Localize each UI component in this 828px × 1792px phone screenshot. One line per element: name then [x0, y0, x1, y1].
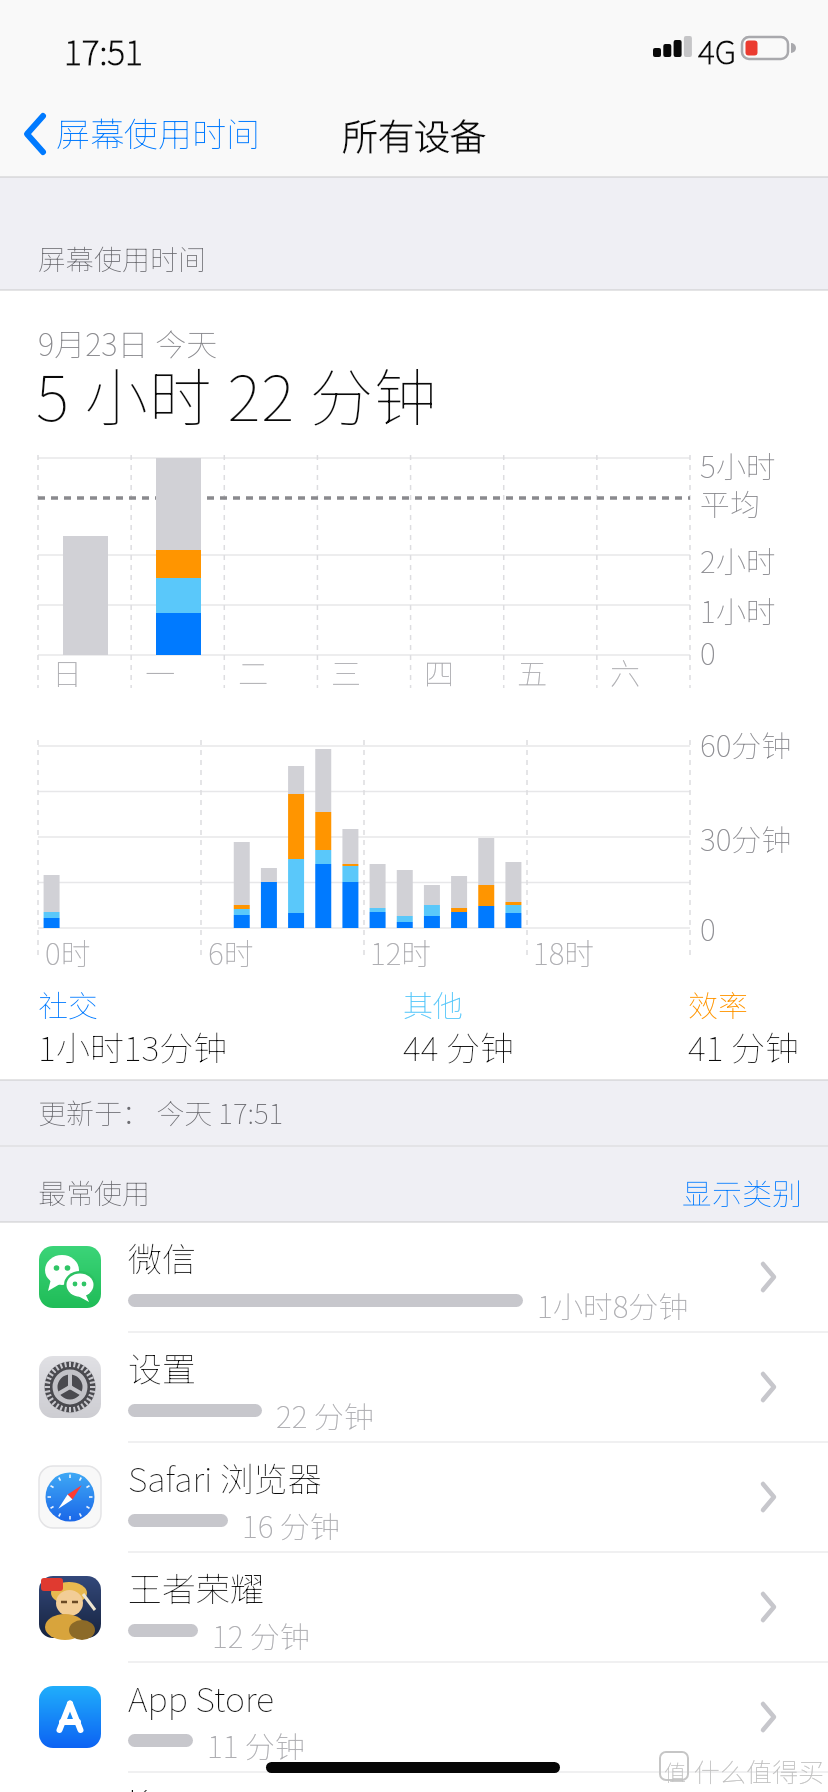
staticText: 12 分钟	[212, 1613, 310, 1656]
button[interactable]	[0, 1552, 828, 1662]
staticText: 平均	[700, 481, 760, 524]
staticText: 9月23日 今天	[38, 320, 218, 365]
staticText: 屏幕使用时间	[56, 108, 260, 157]
staticText: 三	[331, 650, 361, 693]
staticText: 二	[238, 650, 268, 693]
button[interactable]	[0, 1222, 828, 1332]
staticText: 44 分钟	[403, 1022, 514, 1071]
staticText: 0	[700, 630, 716, 673]
staticText: Safari 浏览器	[128, 1453, 322, 1502]
staticText: 一	[145, 650, 175, 693]
staticText: 王者荣耀	[128, 1563, 264, 1612]
staticText: 16 分钟	[242, 1503, 340, 1546]
staticText: 2小时	[700, 538, 776, 581]
staticText: 最常使用	[38, 1172, 151, 1213]
staticText: 什么值得买	[694, 1752, 825, 1790]
staticText: 30分钟	[700, 816, 792, 859]
staticText: 显示类别	[682, 1170, 802, 1213]
staticText: 5 小时 22 分钟	[36, 348, 439, 439]
staticText: 60分钟	[700, 722, 792, 765]
staticText: 1小时8分钟	[537, 1283, 689, 1326]
staticText: 6时	[208, 930, 254, 973]
staticText: 其他	[403, 982, 463, 1025]
staticText: 微信	[128, 1233, 196, 1282]
staticText: 四	[424, 650, 454, 693]
staticText: 值	[664, 1755, 687, 1787]
button[interactable]	[0, 1442, 828, 1552]
staticText: 设置	[128, 1343, 196, 1392]
staticText: 六	[610, 650, 640, 693]
staticText: 11 分钟	[207, 1723, 305, 1766]
staticText: 所有设备	[342, 108, 487, 160]
button[interactable]	[10, 95, 280, 175]
staticText: 41 分钟	[688, 1022, 799, 1071]
button[interactable]	[0, 1332, 828, 1442]
staticText: 效率	[688, 982, 748, 1025]
staticText: 更新于： 今天 17:51	[38, 1092, 284, 1133]
staticText: 17:51	[64, 26, 143, 75]
button[interactable]	[0, 1662, 828, 1772]
staticText: 12时	[370, 930, 432, 973]
staticText: App Store	[128, 1673, 275, 1722]
staticText: 4G	[698, 27, 736, 73]
staticText: 1小时	[700, 588, 776, 631]
staticText: 18时	[533, 930, 595, 973]
staticText: 日	[52, 650, 82, 693]
staticText: 屏幕使用时间	[38, 238, 207, 279]
staticText: 22 分钟	[276, 1393, 374, 1436]
staticText: 5小时	[700, 443, 776, 486]
button[interactable]: 显示类别	[672, 1162, 792, 1205]
staticText: 五	[517, 650, 547, 693]
staticText: 0时	[45, 930, 91, 973]
staticText: Keep	[128, 1775, 205, 1792]
staticText: 0	[700, 906, 716, 949]
staticText: 社交	[38, 982, 98, 1025]
staticText: 1小时13分钟	[38, 1022, 228, 1071]
